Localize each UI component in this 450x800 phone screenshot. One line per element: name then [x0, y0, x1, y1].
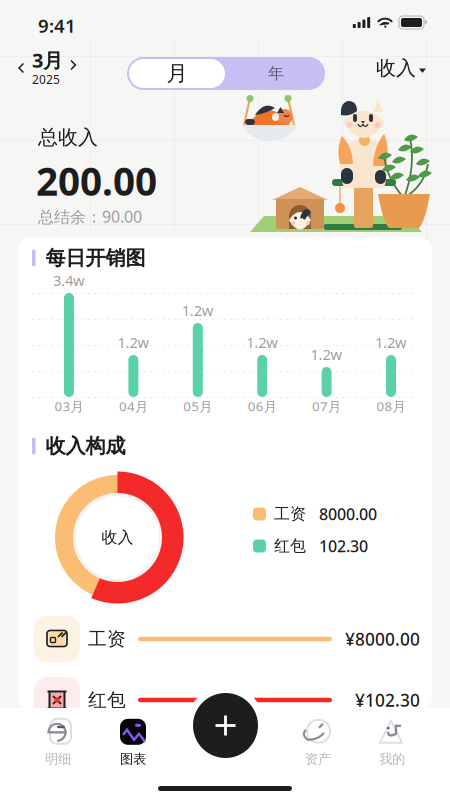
staticText: 04月	[119, 397, 148, 415]
staticText: 图表	[120, 751, 146, 767]
button[interactable]: Add transaction	[186, 686, 265, 765]
staticText: 07月	[312, 397, 341, 415]
button[interactable]: 月	[129, 59, 225, 88]
staticText: 200.00	[36, 155, 157, 206]
staticText: 月	[166, 60, 187, 87]
staticText: 红包	[274, 536, 306, 556]
staticText: 红包	[88, 688, 126, 711]
staticText: 年	[268, 64, 284, 83]
staticText: ¥102.30	[355, 688, 420, 711]
staticText: 05月	[183, 397, 212, 415]
staticText: 收入构成	[46, 434, 126, 458]
staticText: 1.2w	[117, 332, 149, 352]
staticText: 03月	[54, 397, 83, 415]
staticText: 收入	[101, 528, 133, 547]
staticText: 工资	[88, 627, 126, 650]
button[interactable]: 明细	[26, 718, 90, 768]
staticText: ¥8000.00	[345, 627, 420, 650]
button[interactable]: 收入	[370, 48, 432, 88]
button[interactable]: 工资	[18, 611, 432, 667]
staticText: 06月	[248, 397, 277, 415]
staticText: 3.4w	[53, 270, 85, 290]
button[interactable]: 3月	[12, 48, 83, 88]
staticText: 1.2w	[311, 344, 343, 364]
button[interactable]: 我的	[360, 718, 424, 768]
button[interactable]: 资产	[286, 718, 350, 768]
staticText: 1.2w	[375, 332, 407, 352]
staticText: 我的	[379, 751, 405, 767]
staticText: 收入	[376, 56, 416, 80]
staticText: 总结余：90.00	[38, 206, 142, 227]
staticText: 每日开销图	[46, 246, 146, 270]
staticText: 2025	[32, 71, 60, 87]
staticText: 1.2w	[246, 332, 278, 352]
staticText: 工资	[274, 504, 306, 524]
staticText: 明细	[45, 751, 71, 767]
button[interactable]: 年	[227, 57, 325, 90]
staticText: 102.30	[319, 535, 368, 557]
staticText: 3月	[32, 47, 63, 73]
button[interactable]: 图表	[101, 718, 165, 768]
staticText: 08月	[376, 397, 405, 415]
staticText: 1.2w	[182, 300, 214, 320]
button[interactable]: 红包	[18, 672, 432, 728]
staticText: 资产	[305, 751, 331, 767]
staticText: 8000.00	[319, 503, 377, 525]
staticText: 9:41	[38, 13, 76, 38]
staticText: 总收入	[38, 125, 98, 150]
